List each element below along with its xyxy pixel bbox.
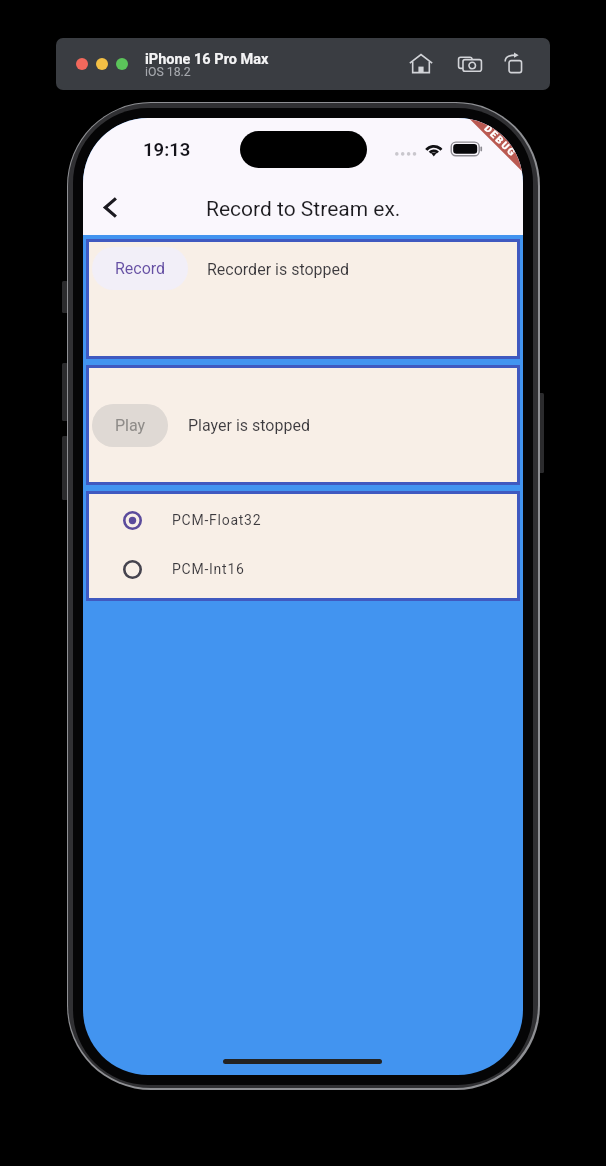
staticText: Recorder is stopped <box>207 260 350 279</box>
staticText: iPhone 16 Pro Max <box>145 51 269 68</box>
staticText: Record to Stream ex. <box>206 197 401 222</box>
button[interactable]: Maximise window <box>116 58 128 70</box>
button[interactable]: Share <box>501 51 527 77</box>
button[interactable]: Minimise window <box>96 58 108 70</box>
staticText: Record <box>115 259 166 278</box>
staticText: Play <box>115 416 146 435</box>
button[interactable]: Screenshot <box>457 51 483 77</box>
button[interactable]: Play <box>92 404 168 447</box>
staticText: PCM-Float32 <box>172 512 262 528</box>
button[interactable]: Close window <box>76 58 88 70</box>
button[interactable]: Back <box>87 184 134 231</box>
staticText: iOS 18.2 <box>145 65 191 79</box>
staticText: DEBUG <box>482 123 519 160</box>
staticText: 19:13 <box>143 139 191 161</box>
button[interactable]: Home <box>408 51 434 77</box>
button[interactable]: PCM-Int16 <box>89 543 517 592</box>
button[interactable]: PCM-Float32 <box>89 494 517 543</box>
staticText: Player is stopped <box>188 416 310 435</box>
staticText: PCM-Int16 <box>172 561 245 577</box>
button[interactable]: Record <box>92 247 188 290</box>
